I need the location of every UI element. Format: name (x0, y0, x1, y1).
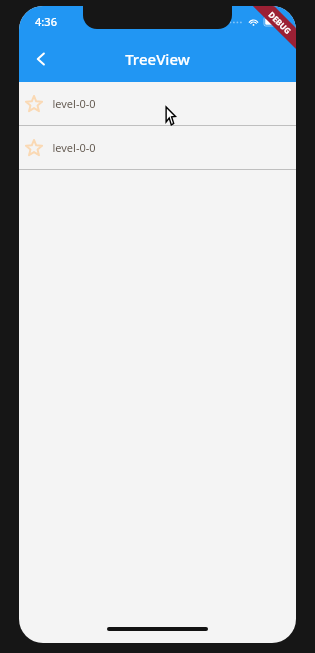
staticText: level-0-0 (52, 96, 96, 111)
staticText: level-0-0 (52, 140, 96, 155)
button[interactable]: level-0-0 (19, 82, 296, 125)
button[interactable]: level-0-0 (19, 126, 296, 169)
staticText: TreeView (125, 49, 190, 69)
staticText: DEBUG (266, 9, 294, 36)
staticText: 4:36 (35, 14, 57, 29)
button[interactable]: Back (19, 37, 63, 81)
